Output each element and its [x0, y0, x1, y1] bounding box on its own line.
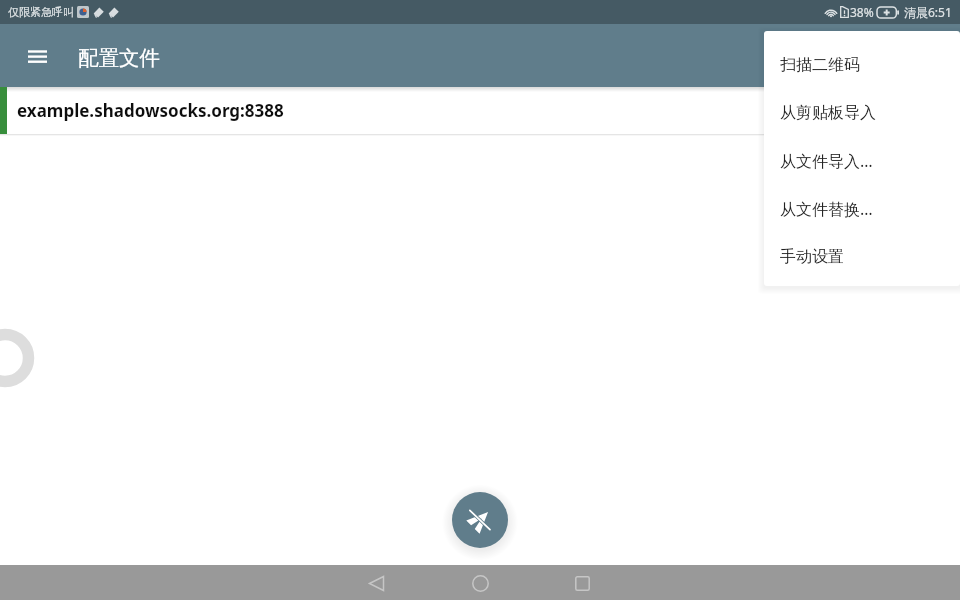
button[interactable]: Open navigation drawer	[18, 37, 56, 75]
staticText: 手动设置	[780, 247, 844, 267]
staticText: 38%	[850, 4, 874, 20]
staticText: example.shadowsocks.org:8388	[17, 99, 284, 122]
staticText: 清晨6:51	[904, 4, 952, 20]
staticText: 从文件替换…	[780, 198, 873, 220]
staticText: 从剪贴板导入	[780, 103, 876, 123]
button[interactable]: Back	[361, 568, 391, 598]
staticText: 扫描二维码	[780, 55, 860, 75]
button[interactable]: 从文件导入…	[764, 137, 960, 185]
staticText: 仅限紧急呼叫	[8, 5, 74, 19]
button[interactable]: 从文件替换…	[764, 185, 960, 233]
button[interactable]: Connect	[452, 492, 508, 548]
button[interactable]: 手动设置	[764, 233, 960, 281]
staticText: 配置文件	[78, 45, 160, 71]
button[interactable]: 从剪贴板导入	[764, 89, 960, 137]
button[interactable]: example.shadowsocks.org:8388	[0, 87, 960, 134]
button[interactable]: Recent apps	[567, 568, 597, 598]
button[interactable]: 扫描二维码	[764, 41, 960, 89]
staticText: 从文件导入…	[780, 150, 873, 172]
button[interactable]: Home	[465, 568, 495, 598]
